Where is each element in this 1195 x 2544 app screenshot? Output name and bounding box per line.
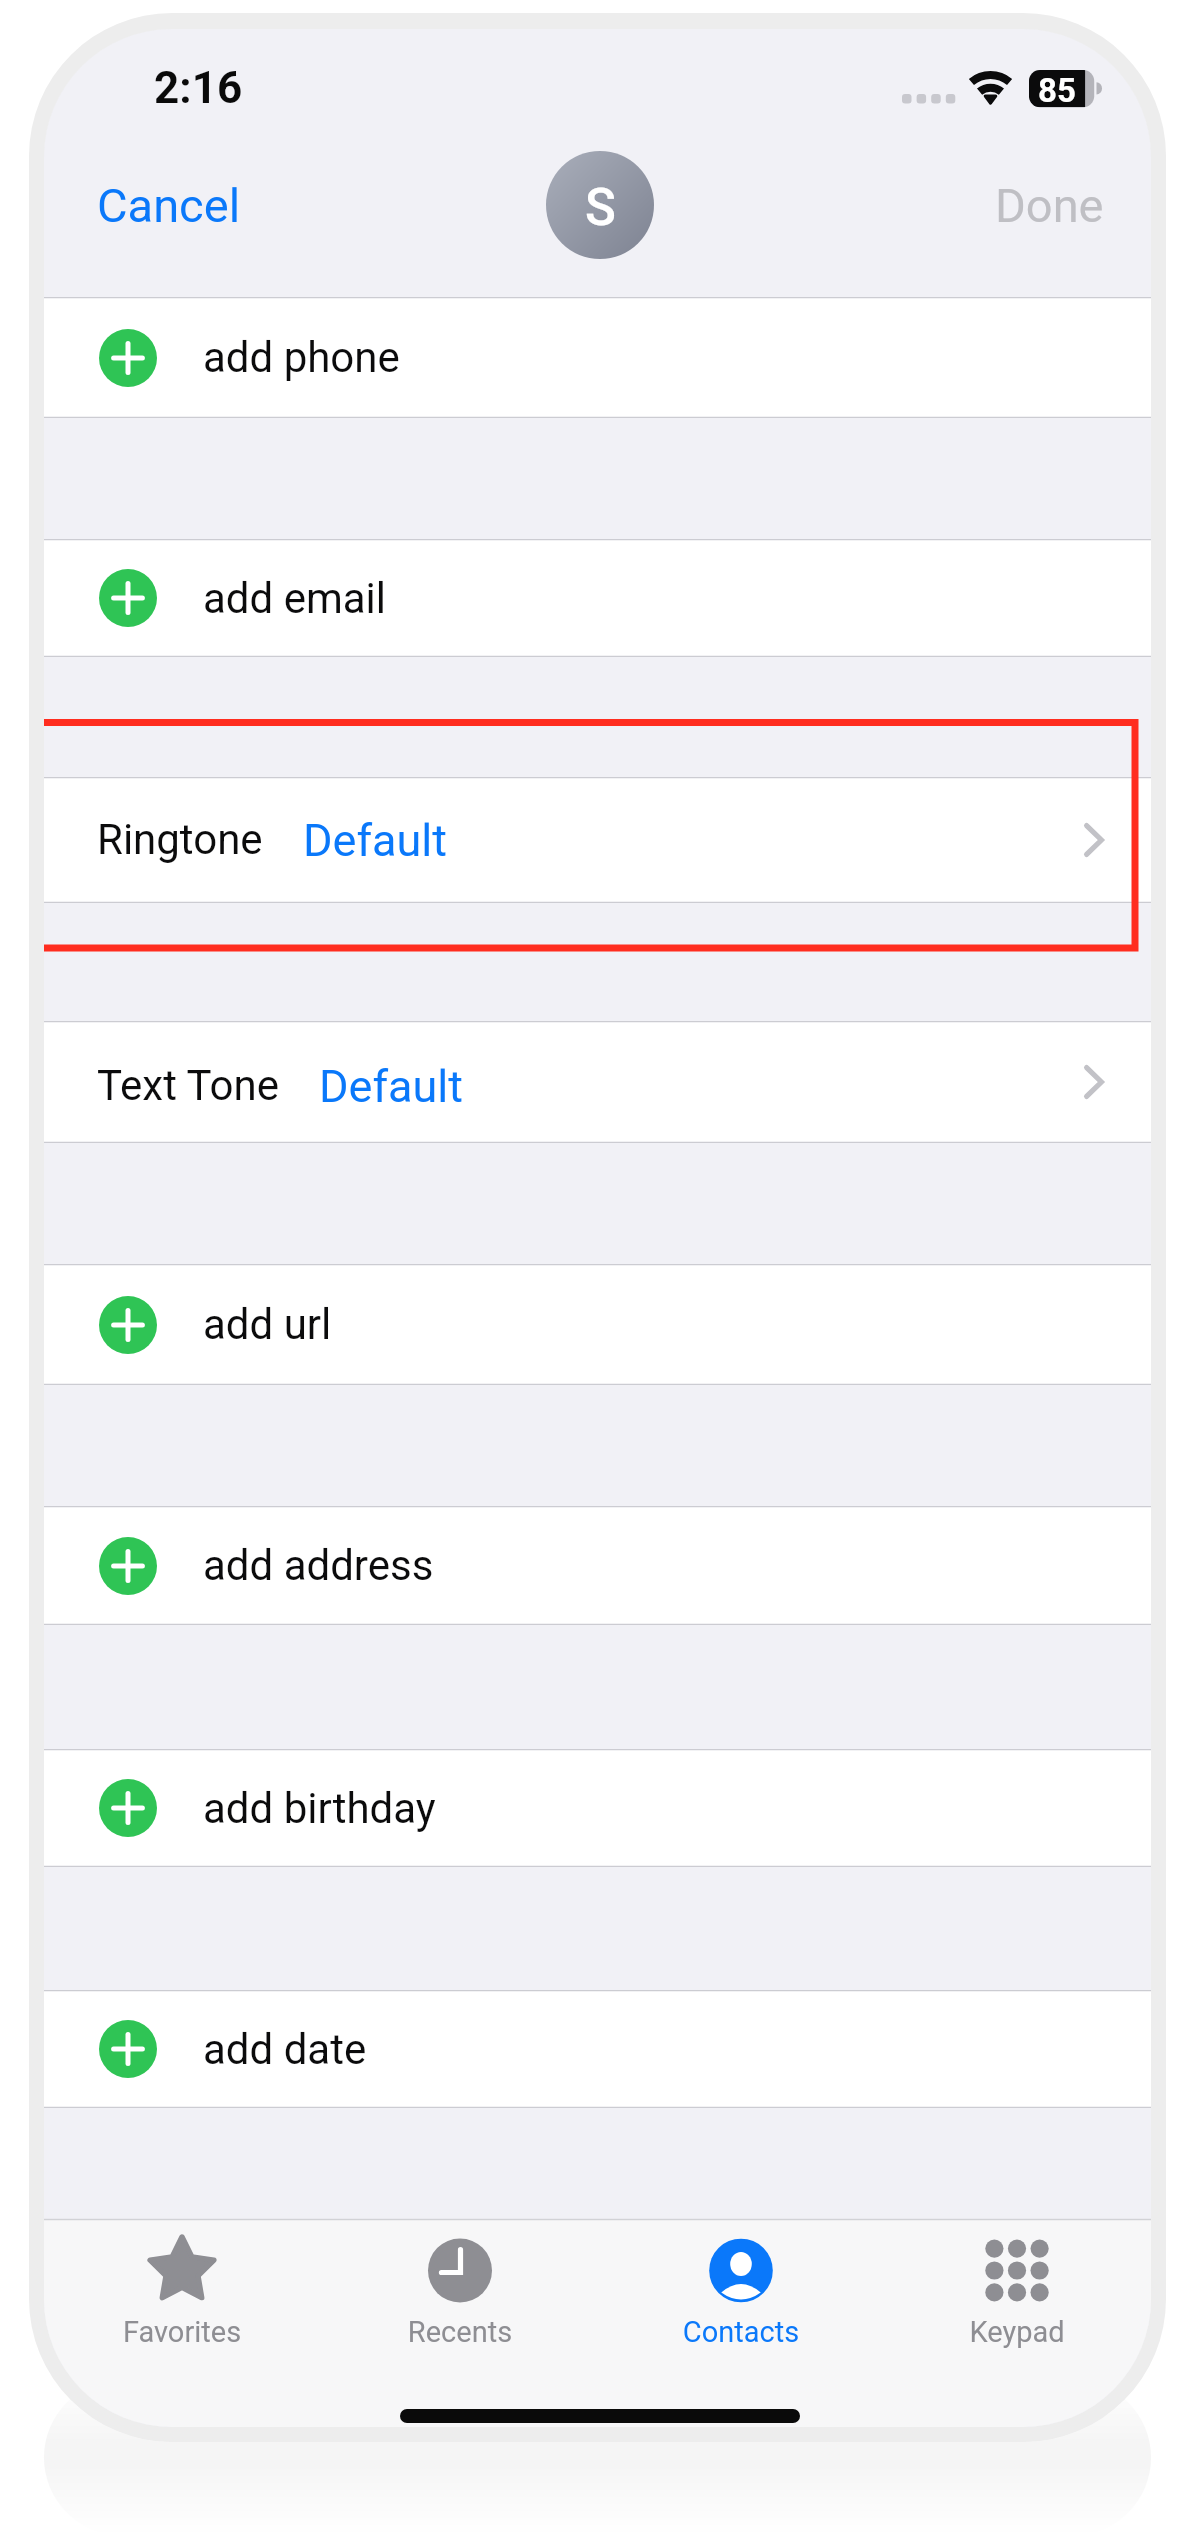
- button[interactable]: add email: [44, 539, 1151, 657]
- staticText: Keypad: [887, 2315, 1147, 2349]
- staticText: add date: [203, 2025, 367, 2074]
- staticText: add phone: [203, 333, 400, 382]
- button[interactable]: add phone: [44, 297, 1151, 418]
- staticText: Default: [303, 814, 447, 867]
- button[interactable]: add date: [44, 1990, 1151, 2108]
- button[interactable]: Contacts: [611, 2219, 871, 2369]
- staticText: Favorites: [52, 2315, 312, 2349]
- button[interactable]: Favorites: [52, 2219, 312, 2369]
- staticText: add address: [203, 1541, 434, 1590]
- button[interactable]: add address: [44, 1506, 1151, 1625]
- button[interactable]: Text Tone: [44, 1021, 1151, 1143]
- staticText: Ringtone: [97, 815, 263, 864]
- staticText: 85: [1030, 71, 1084, 110]
- staticText: Cancel: [97, 178, 241, 233]
- staticText: Contacts: [611, 2315, 871, 2349]
- button[interactable]: add url: [44, 1264, 1151, 1385]
- staticText: Done: [995, 178, 1104, 233]
- staticText: S: [585, 178, 616, 238]
- button[interactable]: Add photo: [546, 151, 654, 259]
- staticText: Default: [319, 1060, 463, 1113]
- button[interactable]: Recents: [330, 2219, 590, 2369]
- button[interactable]: Done: [991, 168, 1108, 243]
- staticText: Recents: [330, 2315, 590, 2349]
- button[interactable]: add birthday: [44, 1749, 1151, 1867]
- staticText: add url: [203, 1300, 332, 1349]
- staticText: Text Tone: [97, 1061, 279, 1110]
- staticText: add email: [203, 574, 387, 623]
- button[interactable]: Cancel: [93, 168, 245, 243]
- staticText: add birthday: [203, 1784, 436, 1833]
- button[interactable]: Keypad: [887, 2219, 1147, 2369]
- button[interactable]: Ringtone: [44, 777, 1151, 903]
- staticText: 2:16: [154, 62, 243, 114]
